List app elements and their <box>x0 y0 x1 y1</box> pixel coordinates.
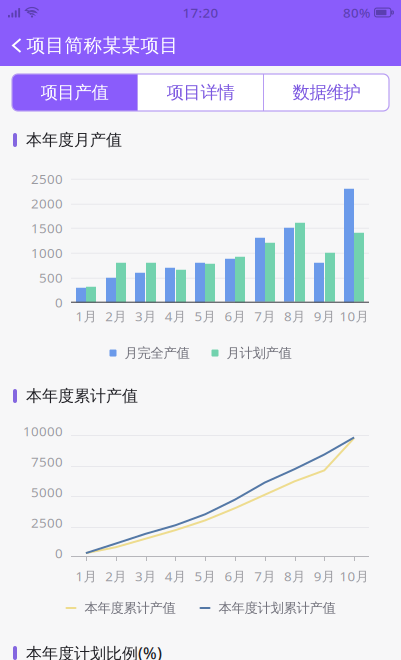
staticText: 10月 <box>340 307 369 325</box>
staticText: 本年度累计产值 <box>76 600 175 616</box>
staticText: 9月 <box>314 567 335 585</box>
staticText: 本年度计划比例(%) <box>26 642 162 660</box>
staticText: 8月 <box>284 307 305 325</box>
staticText: 2月 <box>105 567 126 585</box>
staticText: 本年度月产值 <box>26 130 122 150</box>
staticText: 5月 <box>195 567 216 585</box>
staticText: 7月 <box>254 567 275 585</box>
staticText: 500 <box>39 269 63 286</box>
staticText: 10月 <box>340 567 369 585</box>
staticText: 4月 <box>165 567 186 585</box>
staticText: 3月 <box>135 307 156 325</box>
staticText: 17:20 <box>182 4 218 21</box>
staticText: 2000 <box>31 195 63 212</box>
staticText: 8月 <box>284 567 305 585</box>
button[interactable]: 项目简称某某项目 <box>0 25 188 66</box>
staticText: 项目简称某某项目 <box>26 34 178 57</box>
staticText: 1月 <box>75 567 96 585</box>
staticText: 0 <box>55 293 63 311</box>
staticText: 月完全产值 <box>116 345 189 361</box>
staticText: 1000 <box>31 244 63 262</box>
staticText: 6月 <box>224 307 245 325</box>
staticText: 7500 <box>31 453 63 470</box>
staticText: 1月 <box>75 307 96 325</box>
staticText: 本年度计划累计产值 <box>210 600 335 616</box>
staticText: 4月 <box>165 307 186 325</box>
staticText: 9月 <box>314 307 335 325</box>
staticText: 7月 <box>254 307 275 325</box>
staticText: 2月 <box>105 307 126 325</box>
staticText: 项目详情 <box>166 82 234 103</box>
staticText: 本年度累计产值 <box>26 386 138 406</box>
staticText: 6月 <box>224 567 245 585</box>
staticText: 项目产值 <box>40 82 108 103</box>
staticText: 1500 <box>31 219 63 237</box>
button[interactable]: 数据维护 <box>264 74 389 111</box>
staticText: 2500 <box>31 514 63 531</box>
staticText: 80% <box>343 4 370 21</box>
staticText: 0 <box>55 544 63 562</box>
staticText: 10000 <box>23 422 63 440</box>
staticText: 3月 <box>135 567 156 585</box>
button[interactable]: 项目详情 <box>138 74 263 111</box>
staticText: 5月 <box>195 307 216 325</box>
button[interactable]: 项目产值 <box>12 74 137 111</box>
staticText: 数据维护 <box>292 82 360 103</box>
staticText: 5000 <box>31 483 63 501</box>
staticText: 月计划产值 <box>218 345 291 361</box>
staticText: 2500 <box>31 170 63 188</box>
